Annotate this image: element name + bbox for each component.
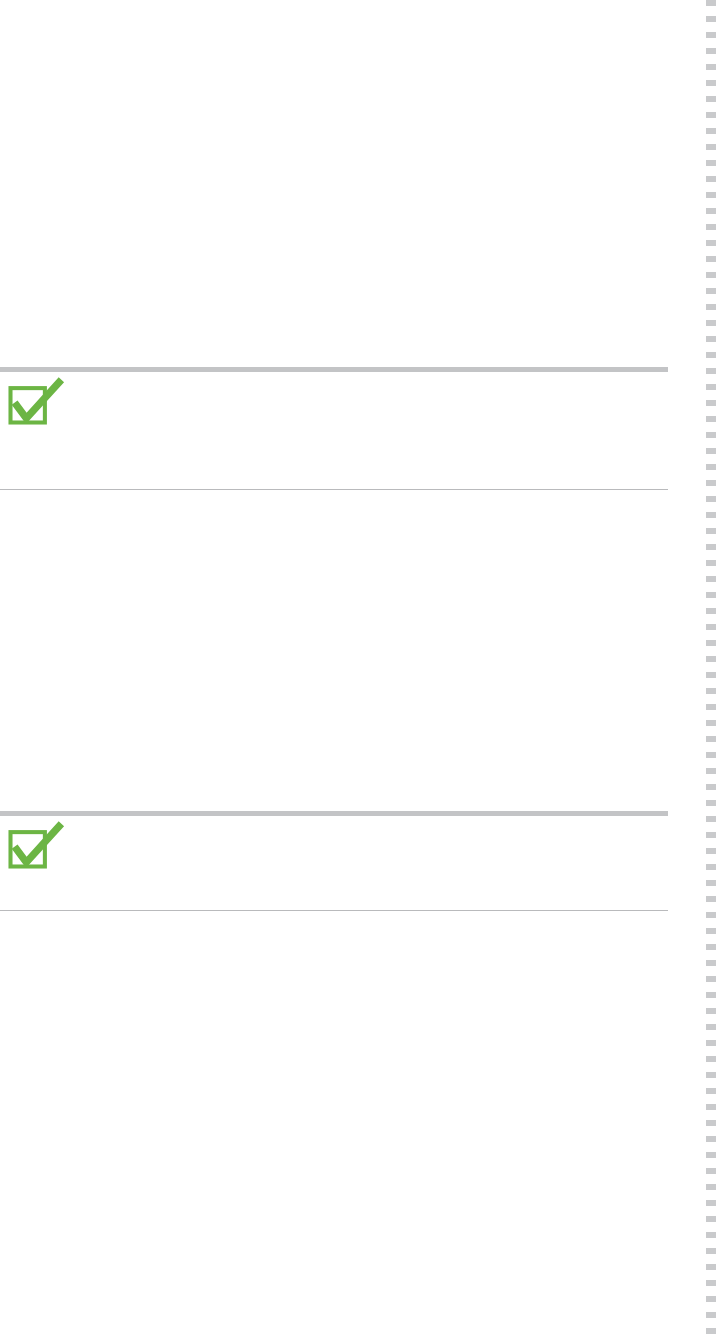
button[interactable]: Checked [0, 822, 668, 868]
button[interactable]: Checked [0, 378, 668, 424]
button[interactable]: Checked [9, 378, 63, 424]
button[interactable]: Checked [9, 822, 63, 868]
